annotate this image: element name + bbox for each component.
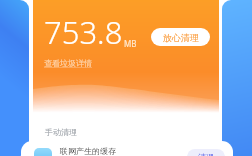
button[interactable]: 查看垃圾详情 (44, 58, 92, 68)
button[interactable]: Next card (222, 0, 252, 156)
button[interactable]: 联网产生的缓存 (21, 141, 233, 156)
staticText: MB (124, 38, 137, 49)
staticText: 清理 (198, 152, 214, 156)
button[interactable]: Previous card (0, 0, 29, 156)
button[interactable]: 清理 (187, 149, 225, 156)
staticText: 放心清理 (163, 32, 199, 43)
button[interactable]: 753.8 (33, 0, 219, 156)
button[interactable]: 放心清理 (151, 28, 210, 46)
staticText: 手动清理 (45, 127, 77, 137)
staticText: 联网产生的缓存 (60, 146, 116, 156)
staticText: 查看垃圾详情 (44, 58, 92, 68)
staticText: 753.8 (44, 11, 123, 53)
